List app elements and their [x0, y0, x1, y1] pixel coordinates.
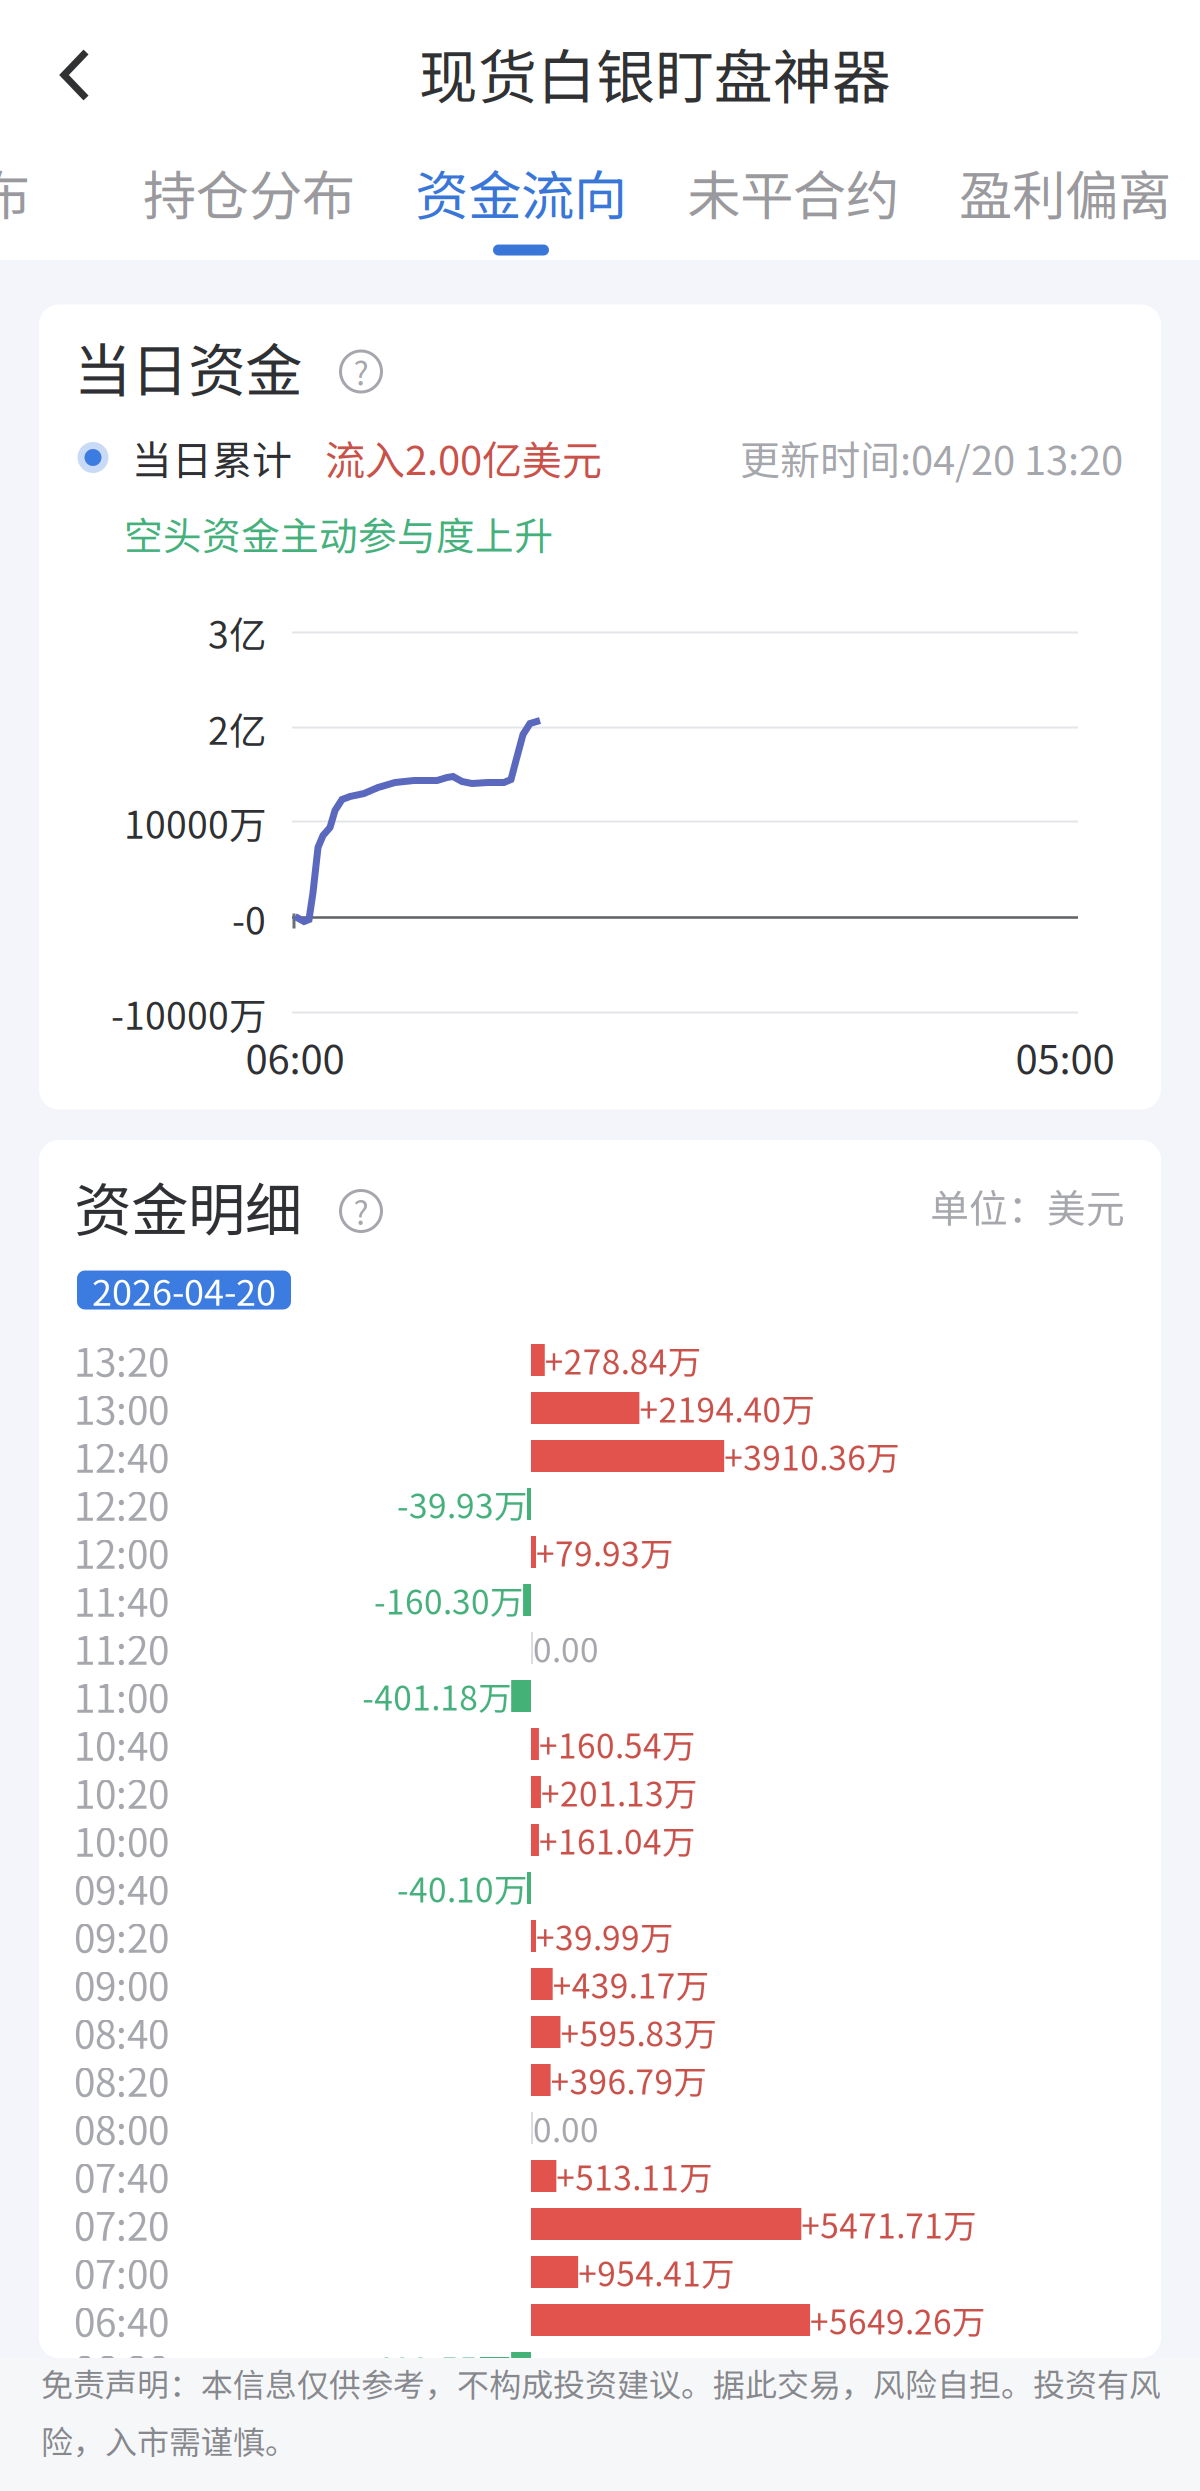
staticText: 0.00	[533, 1624, 599, 1672]
staticText: 13:00	[74, 1380, 169, 1436]
staticText: 持仓分布	[143, 153, 355, 231]
staticText: 09:20	[74, 1908, 169, 1964]
staticText: -160.30万	[374, 1576, 523, 1624]
staticText: +5471.71万	[801, 2200, 976, 2248]
staticText: 2亿	[208, 701, 266, 756]
staticText: 盈利偏离	[959, 153, 1171, 231]
staticText: -10000万	[111, 986, 266, 1041]
staticText: 资金流向	[415, 153, 627, 231]
staticText: 07:00	[74, 2244, 169, 2300]
staticText: 06:00	[245, 1027, 344, 1085]
staticText: +954.41万	[578, 2248, 734, 2296]
staticText: ?	[353, 1188, 368, 1234]
staticText: 07:20	[74, 2196, 169, 2252]
staticText: 11:20	[74, 1620, 169, 1676]
staticText: 08:40	[74, 2004, 169, 2060]
staticText: 09:00	[74, 1956, 169, 2012]
staticText: 09:40	[74, 1860, 169, 1916]
button[interactable]: 持仓分布	[113, 130, 385, 260]
staticText: +396.79万	[551, 2056, 707, 2104]
staticText: 当日累计	[132, 428, 292, 486]
staticText: 2026-04-20	[92, 1264, 276, 1316]
staticText: 06:40	[74, 2292, 169, 2348]
staticText: 12:40	[74, 1428, 169, 1484]
staticText: +5649.26万	[810, 2296, 985, 2344]
staticText: 空头资金主动参与度上升	[124, 505, 553, 561]
staticText: -0	[232, 891, 266, 946]
staticText: 10:20	[74, 1764, 169, 1820]
staticText: 08:00	[74, 2100, 169, 2156]
staticText: 现货白银盯盘神器	[419, 30, 891, 115]
staticText: 更新时间:04/20 13:20	[740, 428, 1123, 486]
staticText: 0.00	[533, 2104, 599, 2152]
staticText: 10:00	[74, 1812, 169, 1868]
staticText: 11:40	[74, 1572, 169, 1628]
staticText: -40.10万	[397, 1864, 527, 1912]
staticText: ?	[353, 348, 368, 395]
staticText: +201.13万	[541, 1768, 697, 1816]
staticText: +79.93万	[536, 1528, 673, 1576]
staticText: 13:20	[74, 1332, 169, 1388]
staticText: 单位：美元	[930, 1178, 1125, 1234]
button[interactable]: 未平合约	[657, 130, 929, 260]
staticText: 资金明细	[74, 1164, 302, 1247]
staticText: +513.11万	[556, 2152, 712, 2200]
button[interactable]: 资金流向	[385, 130, 657, 260]
staticText: +160.54万	[539, 1720, 695, 1768]
staticText: 12:20	[74, 1476, 169, 1532]
staticText: +2194.40万	[639, 1384, 814, 1432]
staticText: 06:20	[74, 2340, 169, 2396]
staticText: 流入2.00亿美元	[325, 428, 602, 486]
button[interactable]: 返回	[21, 20, 131, 130]
staticText: 07:40	[74, 2148, 169, 2204]
staticText: 未平合约	[687, 153, 899, 231]
staticText: 10:40	[74, 1716, 169, 1772]
staticText: 分布	[0, 153, 30, 231]
staticText: 11:00	[74, 1668, 169, 1724]
staticText: +3910.36万	[724, 1432, 899, 1480]
staticText: 08:20	[74, 2052, 169, 2108]
button[interactable]: 分布	[0, 130, 113, 260]
staticText: +595.83万	[560, 2008, 716, 2056]
staticText: 05:00	[1015, 1027, 1114, 1085]
staticText: -401.18万	[362, 1672, 511, 1720]
staticText: 3亿	[208, 605, 266, 660]
button[interactable]: 当日资金说明	[335, 345, 387, 397]
staticText: +39.99万	[536, 1912, 673, 1960]
staticText: +439.17万	[553, 1960, 709, 2008]
staticText: +278.84万	[545, 1336, 701, 1384]
staticText: -39.93万	[397, 1480, 527, 1528]
staticText: 免责声明：本信息仅供参考，不构成投资建议。据此交易，风险自担。投资有风险，入市需…	[41, 2360, 1161, 2463]
staticText: +161.04万	[539, 1816, 695, 1864]
staticText: 当日资金	[74, 325, 302, 408]
staticText: -402.55万	[362, 2344, 511, 2392]
button[interactable]: 盈利偏离	[929, 130, 1200, 260]
button[interactable]: 2026-04-20	[77, 1270, 291, 1309]
staticText: 12:00	[74, 1524, 169, 1580]
staticText: 10000万	[124, 795, 266, 850]
button[interactable]: 资金明细说明	[335, 1185, 387, 1237]
